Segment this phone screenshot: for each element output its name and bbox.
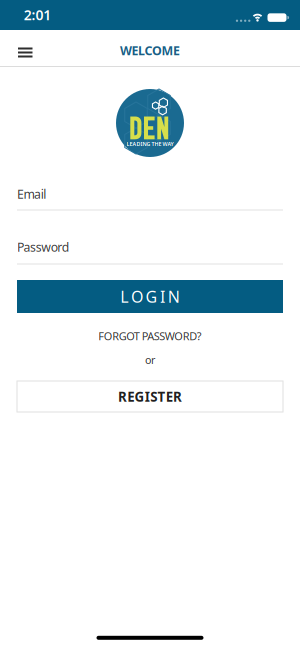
button[interactable]: Email xyxy=(17,186,283,213)
button[interactable]: LOGIN xyxy=(17,280,283,313)
staticText: WELCOME xyxy=(120,42,180,59)
button[interactable]: Menu xyxy=(13,41,37,62)
button[interactable]: REGISTER xyxy=(17,381,283,412)
button[interactable]: FORGOT PASSWORD? xyxy=(98,329,202,343)
staticText: LOGIN xyxy=(120,286,180,307)
staticText: FORGOT PASSWORD? xyxy=(98,329,202,343)
staticText: REGISTER xyxy=(118,388,182,405)
staticText: 2:01 xyxy=(24,5,51,24)
staticText: LEADING THE WAY xyxy=(126,140,173,148)
staticText: or xyxy=(145,352,155,367)
staticText: Email xyxy=(17,186,46,202)
button[interactable]: Password xyxy=(17,239,283,266)
staticText: Password xyxy=(17,239,70,255)
